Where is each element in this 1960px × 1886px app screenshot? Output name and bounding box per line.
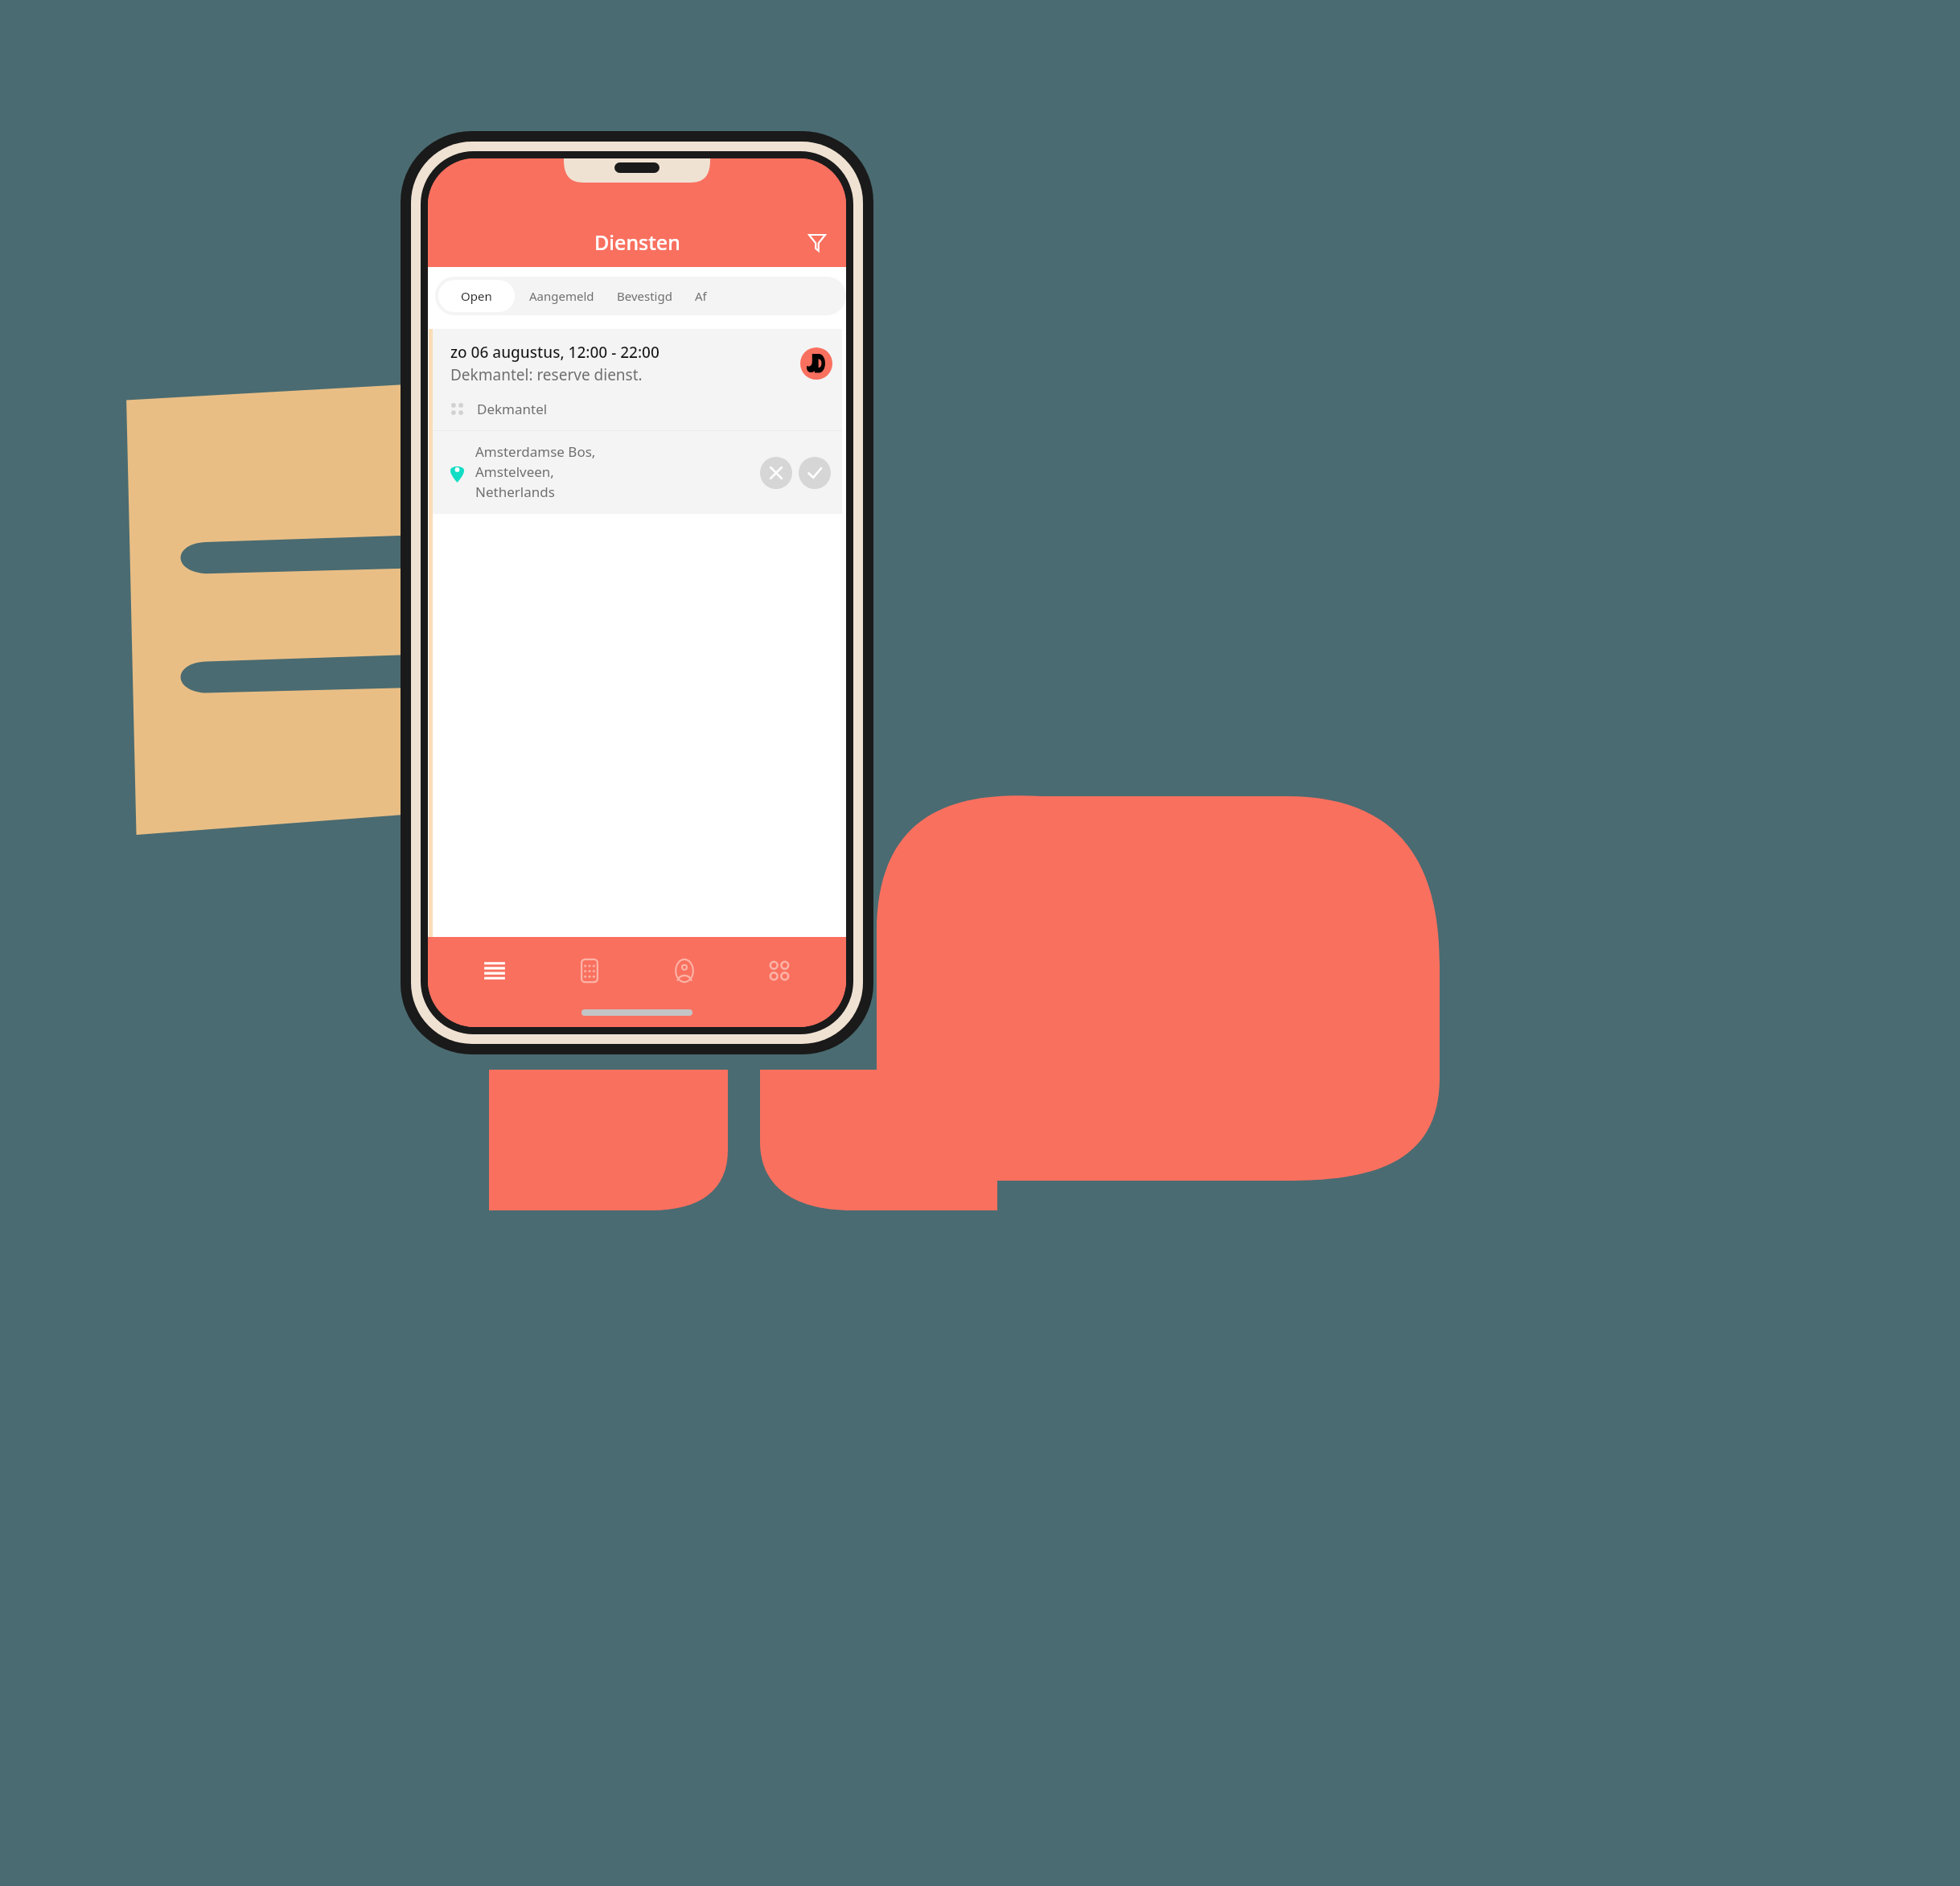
staticText: Open bbox=[461, 288, 492, 304]
button[interactable]: Decline bbox=[760, 457, 792, 489]
staticText: Bevestigd bbox=[617, 288, 672, 304]
button[interactable]: Profile bbox=[656, 950, 713, 992]
button[interactable]: Open bbox=[438, 280, 515, 312]
staticText: Amstelveen, bbox=[475, 462, 554, 481]
staticText: Aangemeld bbox=[529, 288, 594, 304]
button[interactable]: Af bbox=[695, 277, 707, 315]
button[interactable]: Accept bbox=[799, 457, 831, 489]
staticText: zo 06 augustus, 12:00 - 22:00 bbox=[450, 342, 659, 363]
button[interactable]: Calendar bbox=[561, 950, 618, 992]
button[interactable]: zo 06 augustus, 12:00 - 22:00 bbox=[429, 329, 842, 937]
staticText: Amsterdamse Bos, bbox=[475, 442, 596, 461]
staticText: Dekmantel: reserve dienst. bbox=[450, 364, 643, 385]
button[interactable]: Menu bbox=[466, 950, 523, 992]
staticText: Diensten bbox=[594, 228, 680, 256]
button[interactable]: Bevestigd bbox=[617, 277, 672, 315]
button[interactable]: Aangemeld bbox=[529, 277, 594, 315]
staticText: Netherlands bbox=[475, 483, 555, 501]
button[interactable]: More bbox=[751, 950, 807, 992]
staticText: Af bbox=[695, 288, 707, 304]
staticText: Dekmantel bbox=[477, 400, 548, 418]
button[interactable]: Filter bbox=[799, 225, 835, 261]
